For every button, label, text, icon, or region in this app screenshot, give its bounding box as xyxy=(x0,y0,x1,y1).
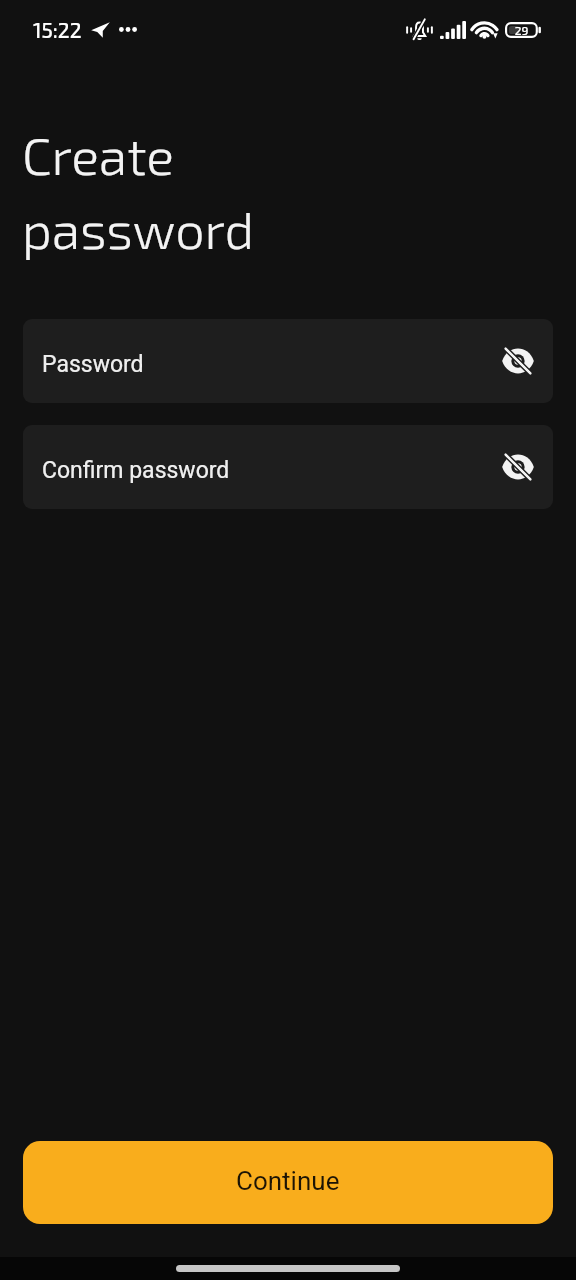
staticText: Confirm password xyxy=(42,457,230,484)
staticText: Continue xyxy=(236,1166,340,1196)
button[interactable]: Show password xyxy=(495,338,541,384)
staticText: 15:22 xyxy=(33,17,82,42)
button[interactable]: Show password xyxy=(495,444,541,490)
staticText: Password xyxy=(42,351,144,378)
staticText: Create password xyxy=(22,123,255,259)
button[interactable]: Continue xyxy=(23,1141,553,1224)
staticText: 29 xyxy=(511,23,532,37)
button[interactable]: Password xyxy=(23,319,553,403)
button[interactable]: Confirm password xyxy=(23,425,553,509)
